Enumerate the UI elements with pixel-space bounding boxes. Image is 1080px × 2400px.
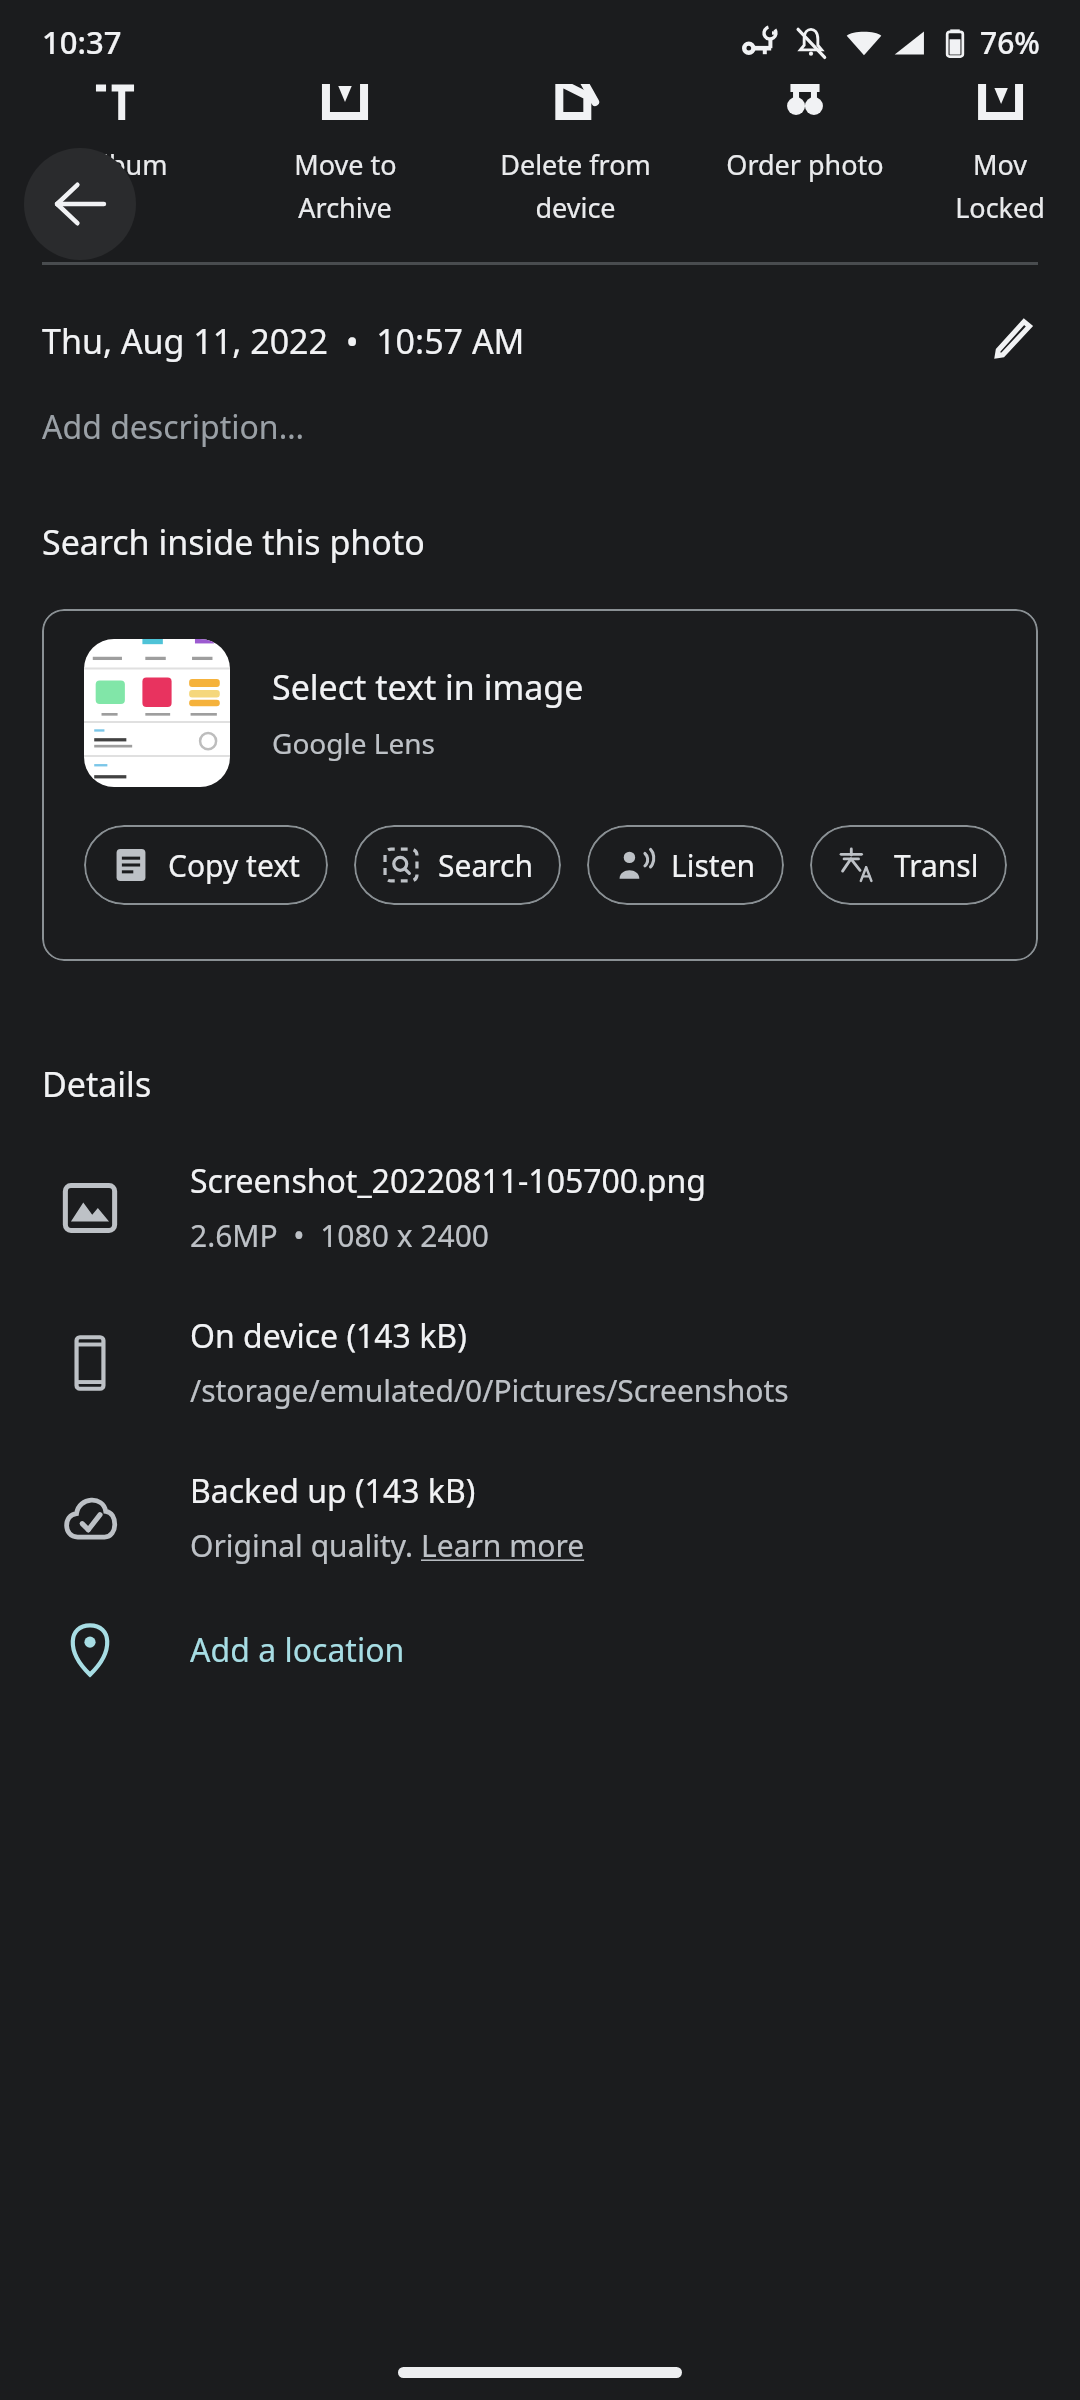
staticText: 2.6MP • 1080 x 2400	[190, 1215, 489, 1256]
button[interactable]: Mov	[920, 84, 1080, 244]
staticText: /storage/emulated/0/Pictures/Screenshots	[190, 1370, 789, 1411]
staticText: Google Lens	[272, 724, 435, 762]
staticText: 10:37	[42, 21, 122, 63]
button[interactable]: Delete from	[460, 84, 690, 244]
button[interactable]: Order photo	[690, 84, 920, 244]
staticText: 76%	[980, 22, 1040, 63]
button[interactable]: Select text in image	[42, 609, 1038, 961]
button[interactable]: Add a location	[0, 1622, 1080, 1678]
staticText: Learn more	[421, 1525, 585, 1566]
staticText: Screenshot_20220811-105700.png	[190, 1159, 706, 1203]
staticText: Listen	[671, 845, 756, 886]
button[interactable]: Search	[354, 825, 561, 905]
button[interactable]: Backed up (143 kB)	[0, 1469, 1080, 1566]
staticText: Archive	[298, 189, 392, 226]
button[interactable]: Transl	[810, 825, 1007, 905]
button[interactable]: Back	[24, 148, 136, 260]
staticText: Order photo	[726, 146, 884, 183]
staticText: Transl	[894, 845, 979, 886]
staticText: Backed up (143 kB)	[190, 1469, 476, 1513]
staticText: On device (143 kB)	[190, 1314, 467, 1358]
staticText: Search inside this photo	[42, 519, 425, 565]
staticText: Original quality.	[190, 1525, 421, 1566]
staticText: device	[535, 189, 616, 226]
button[interactable]: Thu, Aug 11, 2022 • 10:57 AM	[0, 313, 1080, 369]
staticText: Mov	[973, 146, 1027, 183]
staticText: Thu, Aug 11, 2022 • 10:57 AM	[42, 318, 525, 364]
staticText: Details	[42, 1061, 152, 1107]
staticText: o album	[63, 146, 168, 183]
staticText: Copy text	[168, 845, 300, 886]
button[interactable]: On device (143 kB)	[0, 1314, 1080, 1411]
staticText: Add description…	[42, 405, 304, 449]
staticText: Select text in image	[272, 664, 584, 710]
button[interactable]: o album	[0, 84, 230, 244]
staticText: Search	[438, 845, 533, 886]
button[interactable]: Edit date	[984, 313, 1040, 369]
button[interactable]: Move to	[230, 84, 460, 244]
button[interactable]: Add description…	[0, 405, 1080, 449]
button[interactable]: Listen	[587, 825, 784, 905]
staticText: Delete from	[500, 146, 651, 183]
staticText: Move to	[294, 146, 397, 183]
staticText: Locked	[955, 189, 1045, 226]
staticText: Add a location	[190, 1628, 405, 1672]
button[interactable]: Copy text	[84, 825, 328, 905]
button[interactable]: Screenshot_20220811-105700.png	[0, 1159, 1080, 1256]
